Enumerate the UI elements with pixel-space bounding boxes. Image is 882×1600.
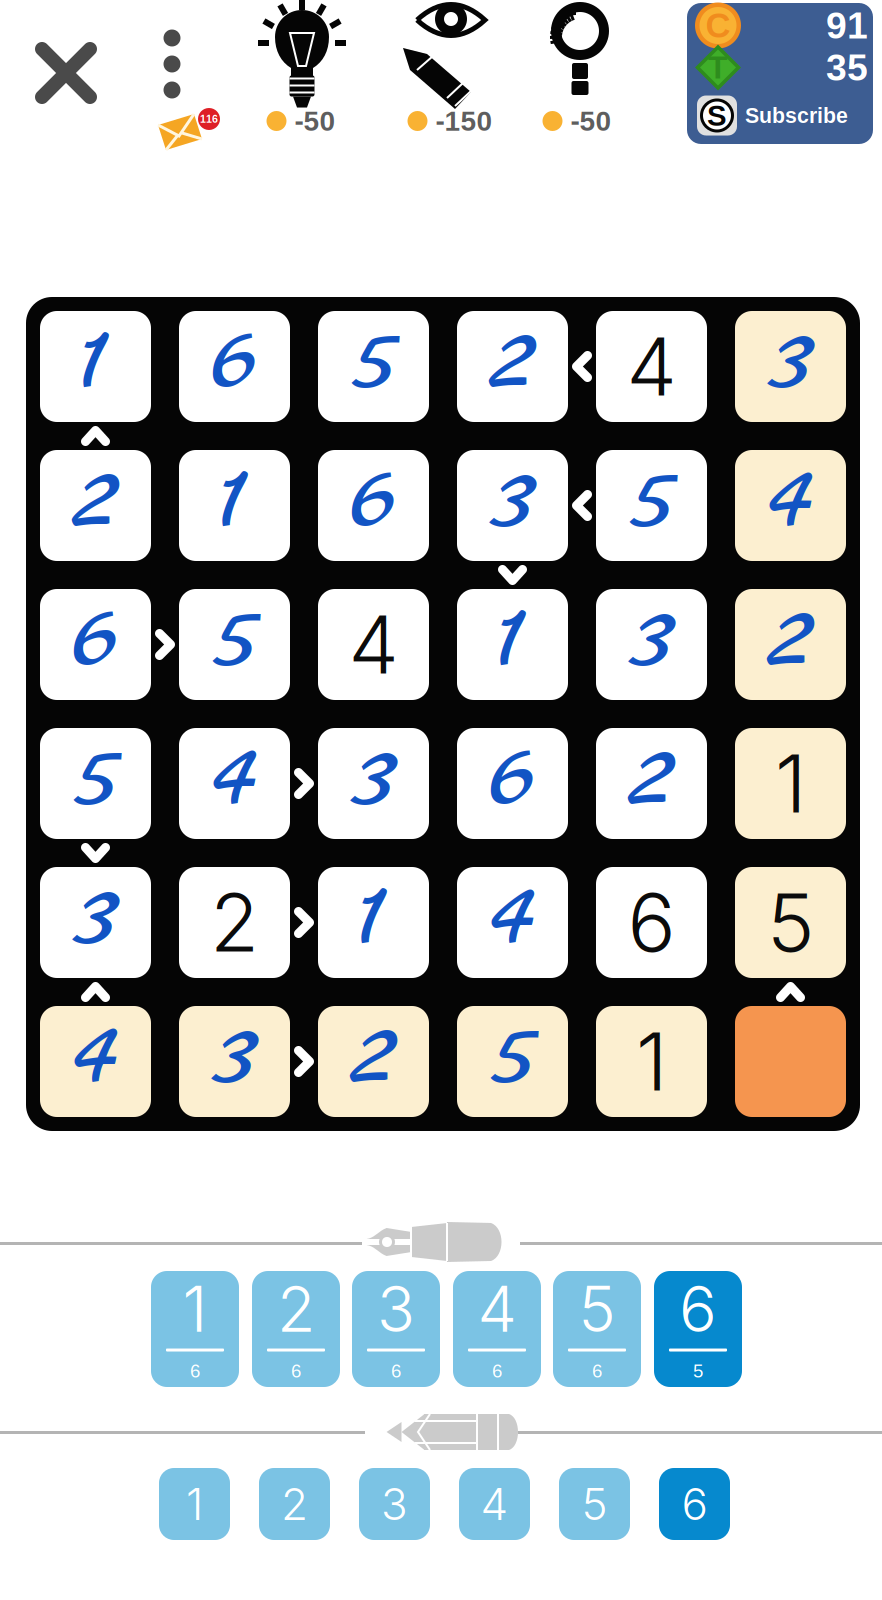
staticText: 3	[213, 991, 256, 1124]
button[interactable]: 1	[457, 589, 568, 700]
button[interactable]: 2	[318, 1006, 429, 1117]
staticText: 3	[381, 1477, 408, 1531]
button[interactable]: 2	[735, 589, 846, 700]
button[interactable]: 4	[453, 1271, 541, 1387]
staticText: 91	[826, 5, 868, 46]
staticText: 3	[352, 713, 395, 846]
button[interactable]: Reveal	[359, 0, 539, 150]
staticText: S	[707, 99, 727, 132]
staticText: 4	[626, 318, 676, 415]
button[interactable]: 1	[735, 728, 846, 839]
staticText: 5	[631, 435, 672, 568]
button[interactable]: Hint	[211, 0, 391, 150]
button[interactable]: 2	[457, 311, 568, 422]
button[interactable]: Close	[34, 41, 98, 105]
staticText: 4	[480, 1477, 508, 1531]
button[interactable]: 3	[179, 1006, 290, 1117]
button[interactable]: 6	[654, 1271, 742, 1387]
button[interactable]: 6	[179, 311, 290, 422]
button[interactable]: Check	[487, 0, 667, 150]
staticText: 5	[75, 713, 116, 846]
staticText: 1	[636, 1013, 667, 1110]
button[interactable]: 4	[457, 867, 568, 978]
staticText: 116	[200, 113, 218, 125]
button[interactable]: 5	[553, 1271, 641, 1387]
staticText: 4	[75, 991, 116, 1124]
staticText: 6	[213, 296, 256, 429]
button[interactable]: Messages, 116 unread	[156, 105, 222, 151]
button[interactable]	[735, 1006, 846, 1117]
staticText: 2	[351, 991, 395, 1124]
button[interactable]: 5	[179, 589, 290, 700]
button[interactable]: 6	[659, 1468, 730, 1540]
staticText: 2	[277, 1271, 315, 1347]
staticText: 5	[353, 296, 394, 429]
button[interactable]: More options	[162, 28, 182, 100]
staticText: 1	[182, 1271, 207, 1347]
staticText: 3	[377, 1271, 415, 1347]
staticText: 3	[74, 852, 117, 985]
button[interactable]: 6	[318, 450, 429, 561]
button[interactable]: 3	[40, 867, 151, 978]
staticText: 1	[186, 1477, 203, 1531]
button[interactable]: 4	[735, 450, 846, 561]
button[interactable]: 3	[596, 589, 707, 700]
button[interactable]: 4	[40, 1006, 151, 1117]
staticText: 1	[362, 852, 385, 985]
staticText: 6	[492, 1361, 502, 1381]
button[interactable]: 6	[457, 728, 568, 839]
button[interactable]: 6	[40, 589, 151, 700]
button[interactable]: 5	[40, 728, 151, 839]
button[interactable]: 3	[318, 728, 429, 839]
staticText: 5	[767, 874, 814, 971]
staticText: 2	[768, 574, 812, 707]
button[interactable]: 1	[318, 867, 429, 978]
staticText: 1	[501, 574, 524, 707]
button[interactable]: 5	[559, 1468, 630, 1540]
staticText: C	[705, 6, 730, 45]
button[interactable]: 3	[352, 1271, 440, 1387]
staticText: 6	[491, 713, 534, 846]
staticText: 6	[391, 1361, 401, 1381]
button[interactable]: 5	[318, 311, 429, 422]
staticText: 6	[681, 1477, 707, 1531]
staticText: 2	[490, 296, 534, 429]
button[interactable]: 2	[179, 867, 290, 978]
staticText: 3	[630, 574, 673, 707]
staticText: T	[708, 50, 728, 85]
staticText: 3	[491, 435, 534, 568]
button[interactable]: 1	[40, 311, 151, 422]
button[interactable]: 2	[259, 1468, 330, 1540]
staticText: 6	[592, 1361, 602, 1381]
button[interactable]: 5	[735, 867, 846, 978]
button[interactable]: 5	[457, 1006, 568, 1117]
button[interactable]: 4	[596, 311, 707, 422]
staticText: Subscribe	[745, 104, 848, 127]
button[interactable]: C	[687, 3, 873, 144]
button[interactable]: 2	[40, 450, 151, 561]
staticText: 2	[629, 713, 673, 846]
staticText: 1	[223, 435, 246, 568]
button[interactable]: 2	[596, 728, 707, 839]
button[interactable]: 4	[459, 1468, 530, 1540]
button[interactable]: 1	[159, 1468, 230, 1540]
staticText: 5	[214, 574, 255, 707]
button[interactable]: 1	[179, 450, 290, 561]
button[interactable]: 1	[596, 1006, 707, 1117]
staticText: 4	[348, 596, 398, 693]
staticText: 6	[627, 874, 675, 971]
button[interactable]: 2	[252, 1271, 340, 1387]
button[interactable]: 4	[318, 589, 429, 700]
staticText: 6	[352, 435, 395, 568]
button[interactable]: 3	[359, 1468, 430, 1540]
button[interactable]: 5	[596, 450, 707, 561]
button[interactable]: 3	[457, 450, 568, 561]
staticText: 5	[492, 991, 533, 1124]
button[interactable]: 6	[596, 867, 707, 978]
button[interactable]: 1	[151, 1271, 239, 1387]
button[interactable]: 3	[735, 311, 846, 422]
staticText: -150	[435, 105, 492, 137]
button[interactable]: 4	[179, 728, 290, 839]
staticText: -50	[570, 105, 611, 137]
staticText: 5	[693, 1361, 703, 1381]
